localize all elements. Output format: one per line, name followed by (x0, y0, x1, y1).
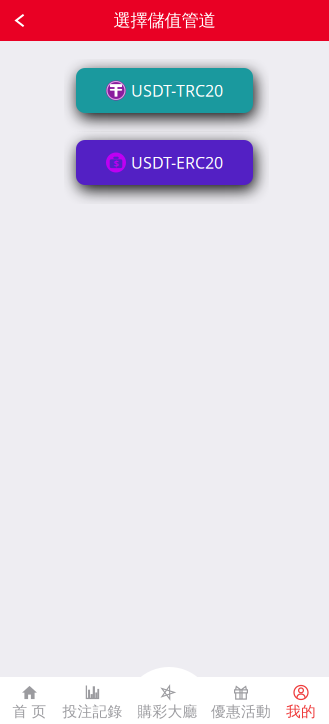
staticText: 投注記錄 (62, 702, 122, 720)
button[interactable]: 優惠活動 (209, 674, 273, 724)
staticText: USDT-ERC20 (131, 152, 223, 173)
staticText: 首 页 (12, 702, 46, 720)
staticText: $ (113, 157, 118, 170)
staticText: 購彩大廳 (137, 702, 197, 720)
staticText: USDT-TRC20 (131, 80, 223, 101)
staticText: 優惠活動 (211, 702, 271, 720)
staticText: 我的 (286, 702, 316, 720)
button[interactable]: 首 页 (0, 674, 59, 724)
button[interactable]: 我的 (273, 674, 329, 724)
button[interactable]: $ (76, 140, 253, 185)
button[interactable]: USDT-TRC20 (76, 68, 253, 113)
staticText: 選擇儲值管道 (113, 10, 215, 31)
button[interactable]: 購彩大廳 (126, 674, 209, 724)
button[interactable]: Back (0, 4, 38, 37)
button[interactable]: 投注記錄 (59, 674, 126, 724)
